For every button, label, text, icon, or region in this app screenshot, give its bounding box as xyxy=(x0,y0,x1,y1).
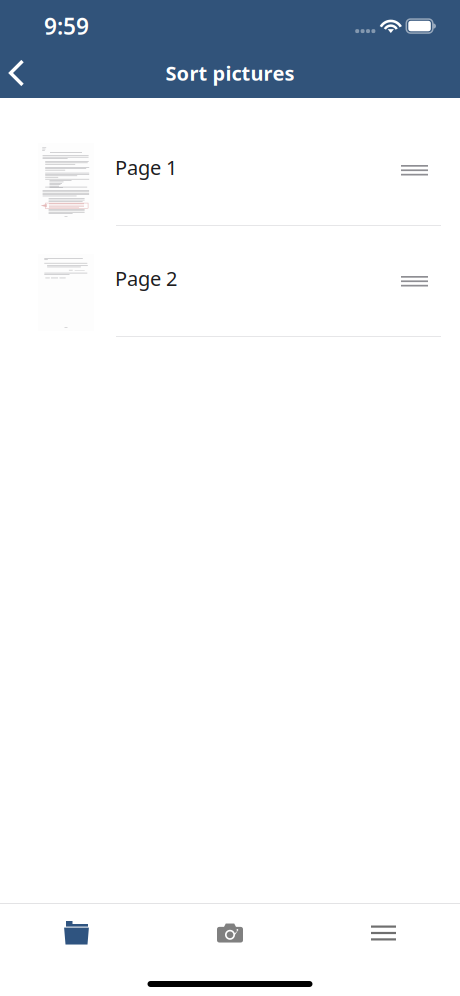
staticText: Page 2 xyxy=(115,265,177,292)
button[interactable]: Camera xyxy=(153,904,307,962)
staticText: Sort pictures xyxy=(165,60,294,86)
button[interactable]: Documents xyxy=(0,904,153,962)
staticText: 9:59 xyxy=(44,11,89,41)
button[interactable]: Page 1 xyxy=(0,115,460,226)
button[interactable]: Menu xyxy=(307,904,460,962)
staticText: Page 1 xyxy=(115,154,177,181)
button[interactable]: Back xyxy=(0,48,40,98)
button[interactable]: Page 2 xyxy=(0,226,460,337)
